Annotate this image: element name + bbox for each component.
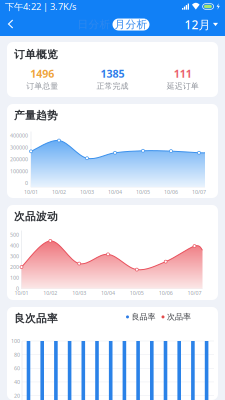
staticText: 300000 xyxy=(10,144,28,151)
staticText: 10/01 xyxy=(14,289,28,297)
staticText: 40 xyxy=(14,378,20,385)
staticText: 1496 xyxy=(30,67,54,81)
staticText: 100000 xyxy=(10,168,28,175)
staticText: 0 xyxy=(25,179,28,187)
staticText: 10/06 xyxy=(159,289,173,297)
staticText: 100 xyxy=(10,274,19,281)
staticText: 0 xyxy=(16,285,19,292)
staticText: 400 xyxy=(10,242,19,249)
staticText: 10/03 xyxy=(72,289,86,297)
staticText: 10/07 xyxy=(187,289,201,297)
staticText: 10/01 xyxy=(24,188,38,196)
staticText: 60 xyxy=(14,365,20,372)
staticText: 300 xyxy=(10,253,19,260)
staticText: 正常完成 xyxy=(96,81,128,91)
button[interactable]: 月分析 xyxy=(112,18,149,30)
staticText: 10/05 xyxy=(136,188,150,196)
staticText: 100 xyxy=(11,337,20,345)
staticText: 20 xyxy=(14,392,20,399)
staticText: 111 xyxy=(174,67,192,81)
staticText: 400000 xyxy=(10,132,28,139)
staticText: 延迟订单 xyxy=(167,81,199,91)
staticText: 500 xyxy=(10,231,19,238)
staticText: 80 xyxy=(14,351,20,358)
staticText: 200 xyxy=(10,263,19,270)
staticText: 12月 xyxy=(184,16,210,32)
button[interactable]: Back xyxy=(0,13,22,36)
staticText: 订单总量 xyxy=(26,81,58,91)
staticText: 10/04 xyxy=(101,289,115,297)
staticText: 订单概览 xyxy=(14,48,58,61)
staticText: 10/02 xyxy=(52,188,66,196)
staticText: 10/02 xyxy=(43,289,57,297)
staticText: 10/07 xyxy=(192,188,206,196)
staticText: 次品波动 xyxy=(14,210,58,223)
button[interactable]: 日分析 xyxy=(75,17,112,31)
staticText: 日分析 xyxy=(77,18,110,31)
staticText: 下午4:22 | 3.7K/s xyxy=(5,0,76,13)
staticText: 产量趋势 xyxy=(14,109,58,122)
staticText: 10/04 xyxy=(108,188,122,196)
staticText: 良次品率 xyxy=(14,312,58,325)
button[interactable]: Select month xyxy=(184,13,225,36)
staticText: 良品率 xyxy=(131,312,155,322)
staticText: 月分析 xyxy=(114,18,147,31)
staticText: 200000 xyxy=(10,156,28,163)
staticText: 10/03 xyxy=(80,188,94,196)
staticText: 10/05 xyxy=(130,289,144,297)
staticText: 10/06 xyxy=(164,188,178,196)
staticText: 次品率 xyxy=(167,312,191,322)
staticText: 1385 xyxy=(100,67,124,81)
